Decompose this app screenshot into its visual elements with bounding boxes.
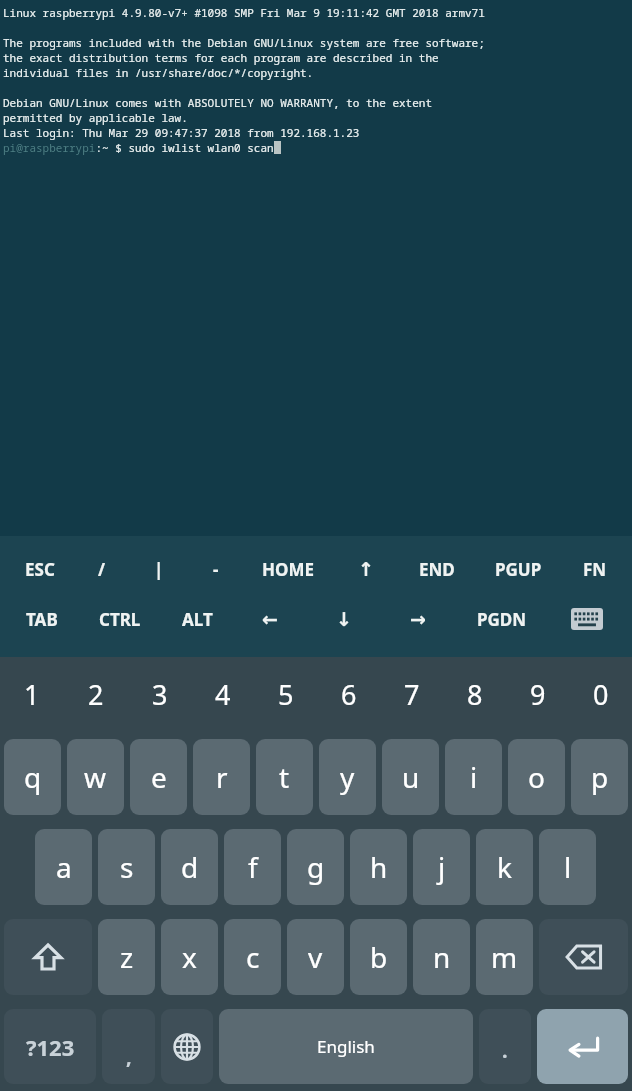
staticText: b (370, 938, 388, 976)
button[interactable]: i (445, 739, 502, 815)
staticText: 3 (152, 676, 168, 713)
button[interactable]: 8 (443, 657, 506, 732)
button[interactable]: 2 (64, 657, 128, 732)
button[interactable]: 3 (128, 657, 191, 732)
button[interactable]: v (287, 919, 344, 995)
button[interactable]: , (102, 1009, 155, 1084)
button[interactable]: p (571, 739, 628, 815)
staticText: 8 (467, 676, 483, 713)
staticText: i (470, 758, 478, 796)
button[interactable]: - (187, 544, 244, 594)
button[interactable]: ?123 (4, 1009, 96, 1084)
staticText: | (154, 558, 164, 581)
button[interactable]: z (98, 919, 155, 995)
button[interactable]: j (413, 829, 470, 905)
button[interactable]: PGDN (455, 594, 548, 644)
button[interactable]: Backspace (539, 919, 628, 995)
button[interactable]: d (161, 829, 218, 905)
button[interactable]: CTRL (78, 594, 162, 644)
staticText: l (564, 848, 572, 886)
button[interactable]: English (219, 1009, 473, 1084)
staticText: FN (583, 558, 607, 581)
staticText: h (370, 848, 388, 886)
button[interactable]: ALT (162, 594, 233, 644)
staticText: . (502, 1037, 508, 1064)
button[interactable]: ESC (6, 544, 74, 594)
staticText: 2 (88, 676, 104, 713)
button[interactable]: Linux raspberrypi 4.9.80-v7+ #1098 SMP F… (0, 0, 632, 536)
staticText: k (497, 848, 512, 886)
staticText: pi@raspberrypi:~ $ sudo iwlist wlan0 sca… (3, 140, 274, 155)
button[interactable]: 0 (569, 657, 632, 732)
staticText: 0 (593, 676, 609, 713)
button[interactable]: ↓ (307, 594, 381, 644)
button[interactable]: k (476, 829, 533, 905)
button[interactable]: t (256, 739, 313, 815)
button[interactable]: HOME (244, 544, 333, 594)
staticText: s (120, 848, 134, 886)
button[interactable]: u (382, 739, 439, 815)
button[interactable]: / (74, 544, 130, 594)
button[interactable]: l (539, 829, 596, 905)
button[interactable]: ← (233, 594, 307, 644)
button[interactable]: x (161, 919, 218, 995)
staticText: ↓ (336, 608, 352, 630)
staticText: 7 (404, 676, 420, 713)
staticText: END (419, 558, 455, 581)
button[interactable]: → (381, 594, 455, 644)
button[interactable]: PGUP (474, 544, 563, 594)
staticText: u (402, 758, 420, 796)
button[interactable]: g (287, 829, 344, 905)
staticText: Debian GNU/Linux comes with ABSOLUTELY N… (3, 95, 432, 110)
button[interactable]: n (413, 919, 470, 995)
button[interactable]: Shift (4, 919, 92, 995)
staticText: r (216, 758, 228, 796)
staticText: , (126, 1043, 132, 1070)
button[interactable]: o (508, 739, 565, 815)
button[interactable]: ↑ (333, 544, 399, 594)
staticText: CTRL (99, 608, 141, 631)
button[interactable]: 5 (254, 657, 317, 732)
staticText: p (591, 758, 609, 796)
button[interactable]: b (350, 919, 407, 995)
button[interactable]: y (319, 739, 376, 815)
staticText: q (24, 758, 42, 796)
button[interactable]: a (35, 829, 92, 905)
staticText: m (491, 938, 518, 976)
staticText: 9 (530, 676, 546, 713)
button[interactable]: 1 (0, 657, 64, 732)
button[interactable]: s (98, 829, 155, 905)
staticText: individual files in /usr/share/doc/*/cop… (3, 65, 314, 80)
staticText: TAB (26, 608, 58, 631)
button[interactable]: 7 (380, 657, 443, 732)
staticText: z (120, 938, 134, 976)
button[interactable]: w (67, 739, 124, 815)
staticText: Last login: Thu Mar 29 09:47:37 2018 fro… (3, 125, 360, 140)
button[interactable]: Enter (537, 1009, 628, 1084)
staticText: f (248, 848, 258, 886)
staticText: y (340, 758, 355, 796)
button[interactable]: FN (563, 544, 626, 594)
button[interactable]: TAB (6, 594, 78, 644)
button[interactable]: . (479, 1009, 531, 1084)
button[interactable]: Hide keyboard (548, 594, 626, 644)
button[interactable]: f (224, 829, 281, 905)
button[interactable]: | (130, 544, 187, 594)
button[interactable]: 9 (506, 657, 569, 732)
staticText: j (438, 848, 446, 886)
button[interactable]: q (4, 739, 61, 815)
button[interactable]: m (476, 919, 533, 995)
staticText: 4 (215, 676, 231, 713)
staticText: PGUP (495, 558, 542, 581)
button[interactable]: c (224, 919, 281, 995)
button[interactable]: 6 (317, 657, 380, 732)
button[interactable]: e (130, 739, 187, 815)
button[interactable]: Change language (161, 1009, 213, 1084)
staticText: / (98, 558, 106, 581)
button[interactable]: 4 (191, 657, 254, 732)
button[interactable]: r (193, 739, 250, 815)
button[interactable]: h (350, 829, 407, 905)
staticText: ALT (182, 608, 213, 631)
staticText: 1 (24, 676, 40, 713)
button[interactable]: END (399, 544, 474, 594)
